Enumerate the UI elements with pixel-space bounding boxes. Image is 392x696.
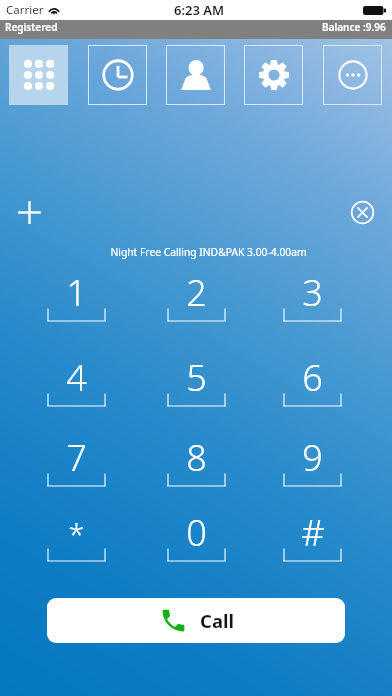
button[interactable]: 1 <box>38 263 115 333</box>
button[interactable]: Contacts <box>166 45 225 105</box>
button[interactable]: Settings <box>244 45 303 105</box>
staticText: 8 <box>186 433 207 482</box>
staticText: 6:23 AM <box>174 1 225 19</box>
button[interactable]: 0 <box>158 503 235 573</box>
staticText: Registered <box>5 20 58 34</box>
button[interactable]: 6 <box>274 348 351 418</box>
staticText: 0 <box>186 508 207 557</box>
staticText: 2 <box>186 268 207 317</box>
staticText: 5 <box>186 353 207 402</box>
staticText: 1 <box>66 268 87 317</box>
button[interactable]: * <box>38 503 115 573</box>
staticText: 3 <box>302 268 323 317</box>
button[interactable]: Recents <box>88 45 147 105</box>
staticText: Call <box>200 608 234 633</box>
button[interactable]: More <box>323 45 382 105</box>
staticText: Night Free Calling IND&PAK 3.00-4.00am <box>110 245 307 259</box>
button[interactable]: Clear <box>346 196 379 229</box>
staticText: Carrier <box>6 2 44 18</box>
staticText: # <box>301 508 325 557</box>
button[interactable]: 5 <box>158 348 235 418</box>
button[interactable]: 3 <box>274 263 351 333</box>
button[interactable]: 7 <box>38 428 115 498</box>
button[interactable]: 9 <box>274 428 351 498</box>
button[interactable]: 2 <box>158 263 235 333</box>
staticText: 9 <box>302 433 323 482</box>
staticText: 4 <box>66 353 87 402</box>
button[interactable]: Keypad <box>9 45 68 105</box>
button[interactable]: Call <box>47 598 345 643</box>
staticText: * <box>68 513 85 554</box>
button[interactable]: 8 <box>158 428 235 498</box>
button[interactable]: 4 <box>38 348 115 418</box>
staticText: 6 <box>302 353 323 402</box>
button[interactable]: Add contact <box>13 196 46 229</box>
button[interactable]: # <box>274 503 351 573</box>
staticText: Balance :9.96 <box>322 20 386 34</box>
staticText: 7 <box>66 433 87 482</box>
